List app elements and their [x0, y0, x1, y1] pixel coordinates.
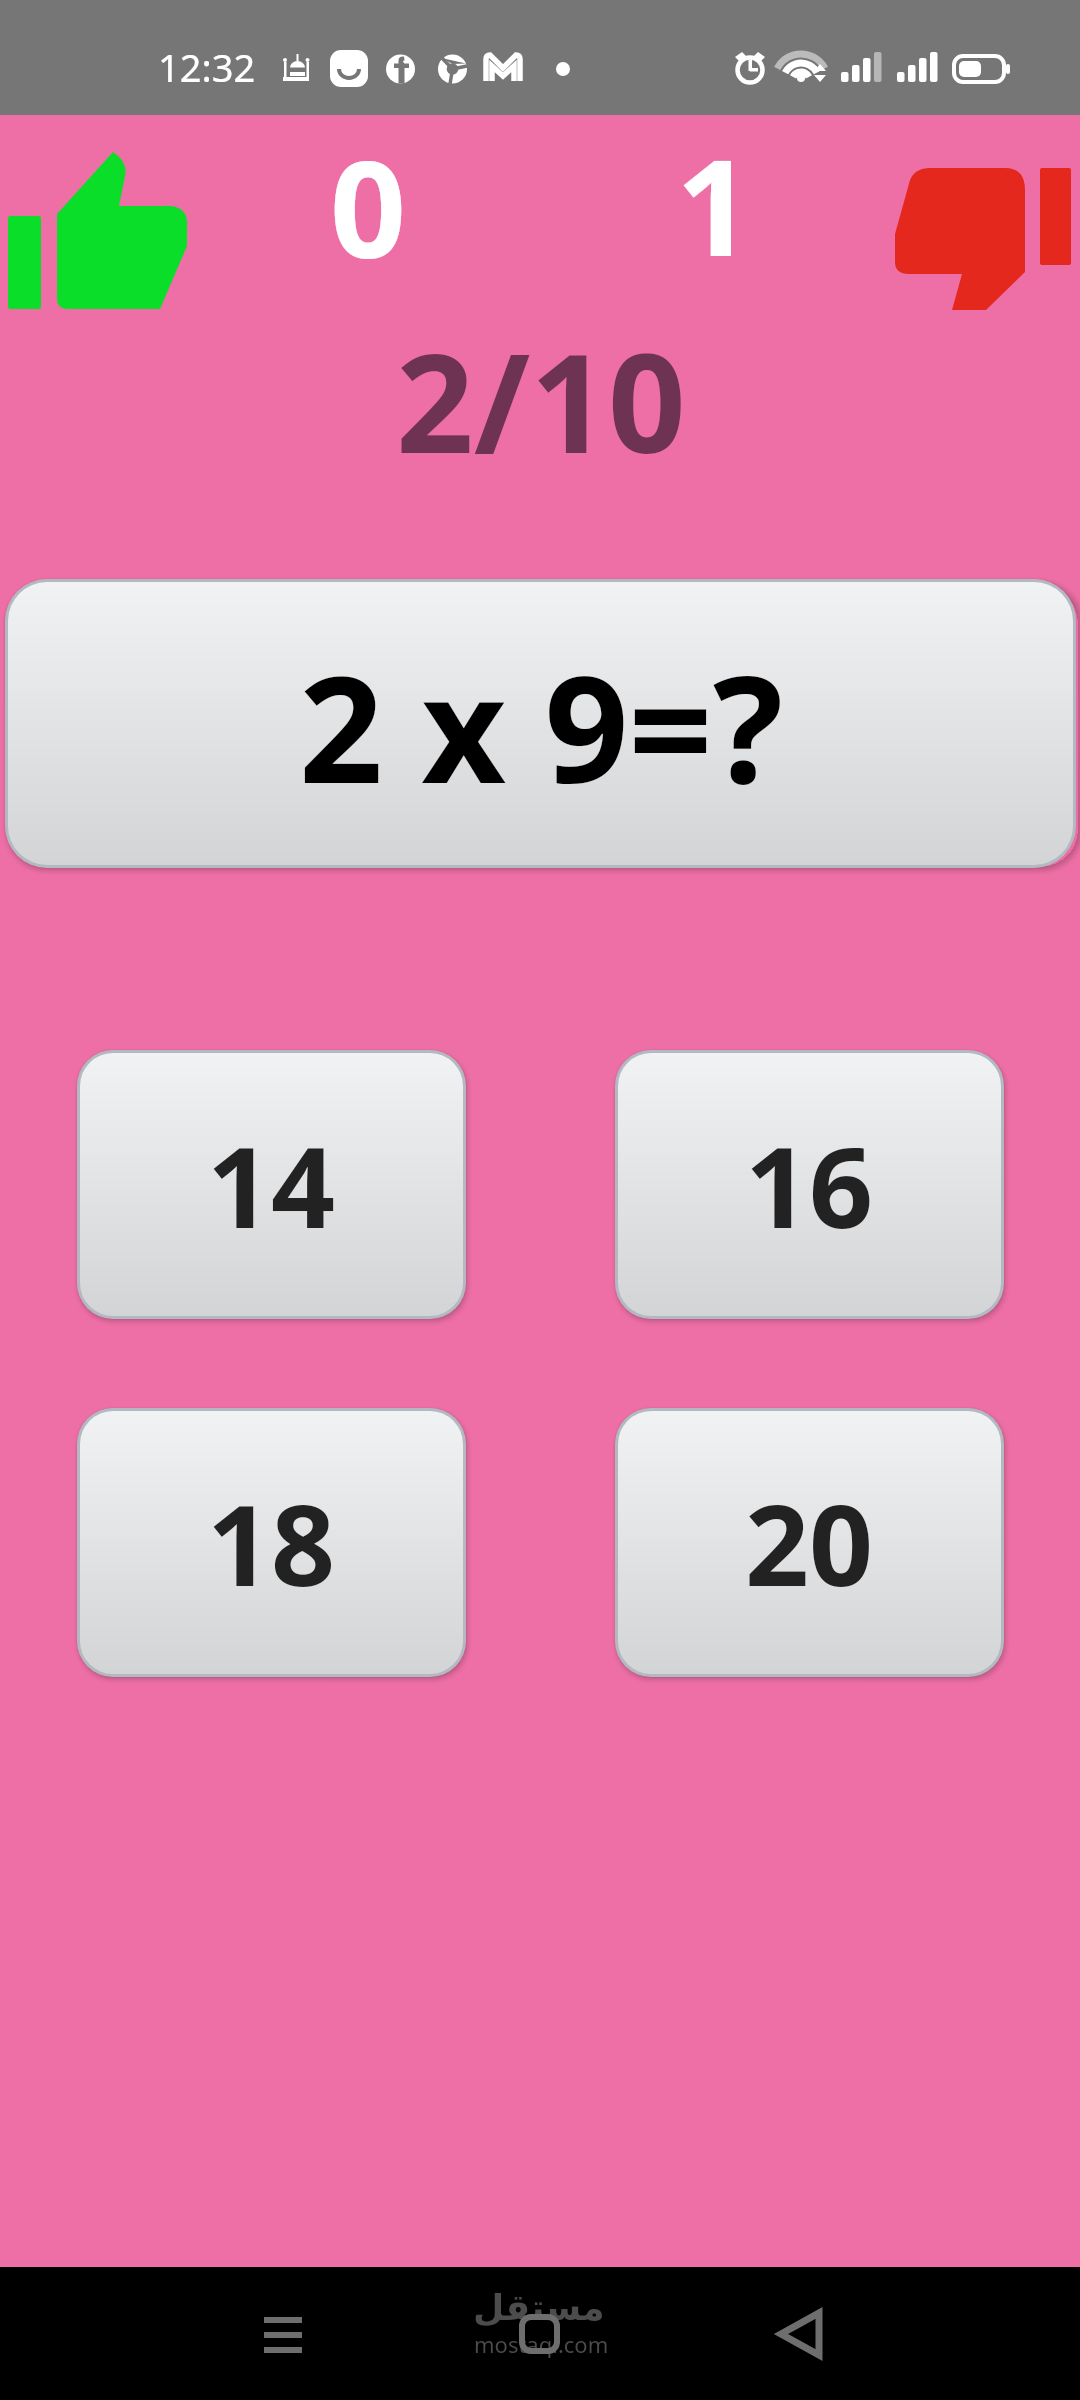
staticText: mostaql.com	[474, 2329, 609, 2359]
button[interactable]: Wrong answers	[885, 160, 1080, 320]
staticText: 1	[676, 114, 753, 295]
button[interactable]: Correct answers	[0, 145, 200, 320]
staticText: 2 x 9=?	[299, 626, 783, 826]
button[interactable]: Back	[779, 2311, 821, 2357]
button[interactable]: Home	[522, 2317, 557, 2351]
staticText: 20	[745, 1466, 874, 1619]
button[interactable]: Menu	[264, 2317, 302, 2353]
staticText: 16	[745, 1108, 874, 1261]
button[interactable]: 2 x 9=?	[8, 582, 1073, 865]
staticText: 2/10	[396, 308, 686, 493]
staticText: 0	[330, 116, 407, 297]
staticText: مستقل	[473, 2287, 605, 2329]
button[interactable]: 20	[618, 1411, 1001, 1674]
button[interactable]: 14	[80, 1053, 463, 1316]
staticText: 12:32	[158, 41, 256, 93]
button[interactable]: 18	[80, 1411, 463, 1674]
staticText: 14	[207, 1108, 336, 1261]
button[interactable]: 16	[618, 1053, 1001, 1316]
staticText: 18	[207, 1466, 336, 1619]
